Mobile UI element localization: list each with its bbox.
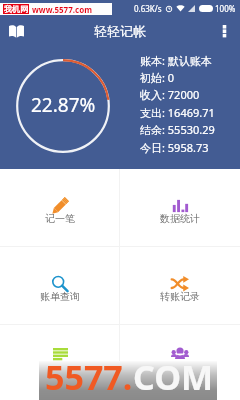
- staticText: 0.63K/s: [134, 3, 162, 14]
- staticText: 记一笔: [45, 212, 75, 225]
- staticText: 100%: [215, 3, 236, 14]
- button[interactable]: 转账记录: [120, 247, 240, 324]
- staticText: 成员管理: [160, 360, 200, 373]
- button[interactable]: 记一笔: [0, 169, 119, 246]
- staticText: 5577.: [45, 354, 133, 393]
- button[interactable]: 账单查询: [0, 247, 119, 324]
- staticText: 我机网: [4, 4, 28, 14]
- staticText: 支出: 16469.71: [140, 105, 215, 120]
- button[interactable]: Account book: [4, 19, 28, 43]
- staticText: www.5577.com: [32, 4, 92, 15]
- staticText: 账单查询: [40, 290, 80, 303]
- staticText: 结余: 55530.29: [140, 122, 215, 137]
- staticText: 账本: 默认账本: [140, 53, 212, 68]
- staticText: 初始: 0: [140, 70, 175, 85]
- staticText: 转账记录: [160, 290, 200, 303]
- button[interactable]: 预算设置: [0, 325, 119, 400]
- staticText: 收入: 72000: [140, 87, 200, 102]
- staticText: 数据统计: [160, 212, 200, 225]
- staticText: COM: [133, 354, 214, 393]
- button[interactable]: More options: [213, 20, 235, 42]
- button[interactable]: 成员管理: [120, 325, 240, 400]
- staticText: 22.87%: [31, 92, 96, 118]
- button[interactable]: 数据统计: [120, 169, 240, 246]
- staticText: 轻轻记帐: [94, 23, 146, 39]
- staticText: 预算设置: [40, 360, 80, 373]
- staticText: 今日: 5958.73: [140, 140, 209, 155]
